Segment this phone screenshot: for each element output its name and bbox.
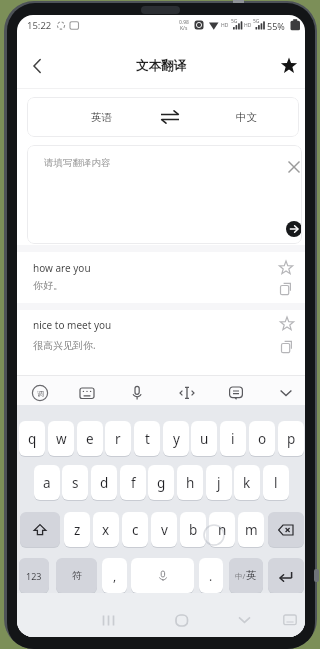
- button[interactable]: [101, 615, 117, 627]
- button[interactable]: [128, 384, 146, 402]
- button[interactable]: w: [48, 421, 74, 456]
- button[interactable]: y: [163, 421, 189, 456]
- staticText: h: [186, 474, 195, 492]
- button[interactable]: [25, 53, 49, 79]
- staticText: 15:22: [27, 19, 52, 32]
- staticText: 英: [246, 569, 257, 582]
- button[interactable]: i: [220, 421, 246, 456]
- staticText: HD: [244, 22, 252, 29]
- button[interactable]: 符: [56, 558, 97, 593]
- button[interactable]: f: [120, 465, 146, 500]
- button[interactable]: [268, 512, 304, 547]
- staticText: 英语: [91, 111, 112, 124]
- button[interactable]: [283, 614, 297, 626]
- staticText: 中/: [235, 571, 246, 581]
- button[interactable]: ,: [102, 558, 127, 593]
- button[interactable]: q: [19, 421, 45, 456]
- button[interactable]: [283, 156, 302, 178]
- button[interactable]: s: [62, 465, 88, 500]
- staticText: u: [200, 430, 209, 448]
- staticText: 5G: [253, 18, 260, 25]
- button[interactable]: e: [77, 421, 103, 456]
- staticText: 123: [26, 570, 42, 582]
- button[interactable]: l: [263, 465, 289, 500]
- staticText: m: [245, 521, 258, 539]
- button[interactable]: u: [191, 421, 217, 456]
- button[interactable]: how are you: [17, 252, 305, 303]
- staticText: 5G: [231, 18, 238, 25]
- staticText: y: [173, 430, 180, 448]
- staticText: 0.98: [179, 19, 189, 26]
- button[interactable]: [279, 282, 293, 296]
- button[interactable]: k: [234, 465, 260, 500]
- button[interactable]: [277, 53, 303, 79]
- button[interactable]: [227, 384, 245, 402]
- staticText: z: [74, 521, 81, 539]
- staticText: 很高兴见到你.: [33, 338, 96, 352]
- button[interactable]: j: [206, 465, 232, 500]
- staticText: n: [218, 521, 227, 539]
- staticText: v: [161, 521, 168, 539]
- button[interactable]: a: [34, 465, 60, 500]
- button[interactable]: g: [148, 465, 174, 500]
- button[interactable]: [238, 616, 251, 625]
- staticText: nice to meet you: [33, 318, 112, 332]
- staticText: 请填写翻译内容: [44, 157, 111, 169]
- button[interactable]: nice to meet you: [17, 310, 305, 362]
- button[interactable]: [279, 316, 295, 332]
- staticText: how are you: [33, 261, 91, 275]
- staticText: ,: [113, 568, 117, 584]
- staticText: .: [209, 568, 213, 584]
- button[interactable]: 中文: [193, 97, 299, 137]
- staticText: j: [217, 474, 221, 492]
- button[interactable]: [20, 512, 60, 547]
- button[interactable]: m: [238, 512, 264, 547]
- button[interactable]: [277, 384, 295, 402]
- staticText: b: [189, 521, 198, 539]
- staticText: x: [102, 521, 110, 539]
- staticText: 调: [37, 389, 44, 398]
- staticText: l: [274, 474, 278, 492]
- button[interactable]: v: [151, 512, 177, 547]
- button[interactable]: r: [105, 421, 131, 456]
- button[interactable]: [268, 558, 304, 593]
- button[interactable]: [278, 260, 294, 276]
- button[interactable]: .: [199, 558, 223, 593]
- button[interactable]: b: [180, 512, 206, 547]
- button[interactable]: 调: [31, 384, 49, 402]
- button[interactable]: 123: [19, 558, 49, 593]
- staticText: 55%: [267, 20, 285, 32]
- staticText: g: [157, 474, 166, 492]
- button[interactable]: p: [278, 421, 304, 456]
- button[interactable]: 中/: [229, 558, 263, 593]
- button[interactable]: [175, 614, 189, 627]
- button[interactable]: d: [91, 465, 117, 500]
- staticText: w: [56, 430, 67, 448]
- button[interactable]: h: [177, 465, 203, 500]
- staticText: K/s: [180, 25, 188, 32]
- button[interactable]: n: [209, 512, 235, 547]
- button[interactable]: x: [93, 512, 119, 547]
- button[interactable]: [178, 384, 196, 402]
- button[interactable]: [286, 221, 302, 237]
- button[interactable]: [78, 384, 96, 402]
- staticText: HD: [221, 22, 229, 29]
- staticText: i: [231, 430, 235, 448]
- staticText: f: [131, 474, 136, 492]
- button[interactable]: z: [64, 512, 90, 547]
- button[interactable]: t: [134, 421, 160, 456]
- button[interactable]: [280, 340, 294, 354]
- button[interactable]: c: [122, 512, 148, 547]
- staticText: 文本翻译: [17, 58, 305, 74]
- staticText: 你好。: [33, 279, 63, 292]
- button[interactable]: 请填写翻译内容: [27, 145, 302, 244]
- staticText: k: [243, 474, 251, 492]
- staticText: q: [28, 430, 37, 448]
- staticText: d: [100, 474, 109, 492]
- button[interactable]: 英语: [41, 97, 161, 137]
- button[interactable]: [131, 558, 194, 593]
- staticText: s: [72, 474, 79, 492]
- button[interactable]: o: [249, 421, 275, 456]
- staticText: t: [145, 430, 150, 448]
- button[interactable]: [147, 97, 193, 137]
